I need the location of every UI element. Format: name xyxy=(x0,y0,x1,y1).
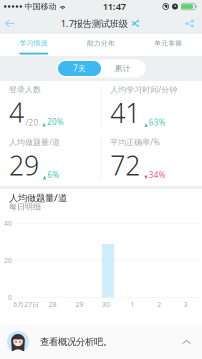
staticText: 人均学习时间/分钟 xyxy=(110,84,177,95)
button[interactable]: 7天 xyxy=(58,61,101,76)
staticText: 20 xyxy=(4,256,12,265)
staticText: 能力分布 xyxy=(87,39,115,47)
staticText: 平均正确率/% xyxy=(110,137,160,147)
staticText: 30 xyxy=(102,300,110,309)
staticText: 63% xyxy=(149,117,166,128)
staticText: /20 xyxy=(25,117,38,128)
button[interactable]: 单元掌握 xyxy=(135,34,202,56)
staticText: 累计 xyxy=(114,64,130,73)
staticText: 6% xyxy=(47,169,59,180)
staticText: 1 xyxy=(131,300,135,309)
button[interactable]: 查看概况分析吧。 xyxy=(0,325,202,359)
staticText: 28 xyxy=(49,300,57,309)
staticText: 4 xyxy=(9,94,24,130)
staticText: 34% xyxy=(149,169,166,180)
staticText: 7天 xyxy=(73,63,86,74)
button[interactable]: 累计 xyxy=(101,61,144,76)
staticText: 2 xyxy=(157,300,161,309)
button[interactable]: 学习情况 xyxy=(0,34,67,56)
staticText: 72 xyxy=(110,147,140,183)
staticText: 0 xyxy=(8,293,12,302)
staticText: 查看概况分析吧。 xyxy=(40,336,112,348)
staticText: 1.7报告测试班级 xyxy=(61,17,128,30)
staticText: 40 xyxy=(4,219,12,228)
staticText: 41 xyxy=(110,95,140,130)
staticText: 3 xyxy=(184,300,188,309)
staticText: 20% xyxy=(47,117,64,127)
staticText: 11:47 xyxy=(103,0,126,13)
staticText: 每日明细 xyxy=(9,202,41,212)
staticText: 29 xyxy=(75,300,83,309)
button[interactable]: 能力分布 xyxy=(67,34,135,56)
staticText: 人均做题量/道 xyxy=(9,191,67,204)
staticText: 人均做题量/道 xyxy=(9,137,60,147)
staticText: 学习情况 xyxy=(20,39,48,47)
staticText: 中国移动 xyxy=(25,2,57,11)
staticText: 登录人数 xyxy=(9,85,41,94)
button[interactable]: Switch class xyxy=(132,20,139,27)
button[interactable]: Share xyxy=(179,14,199,33)
staticText: 6月27日 xyxy=(13,300,39,309)
button[interactable]: Back xyxy=(3,14,21,32)
staticText: 29 xyxy=(9,147,39,183)
staticText: 单元掌握 xyxy=(154,39,182,47)
